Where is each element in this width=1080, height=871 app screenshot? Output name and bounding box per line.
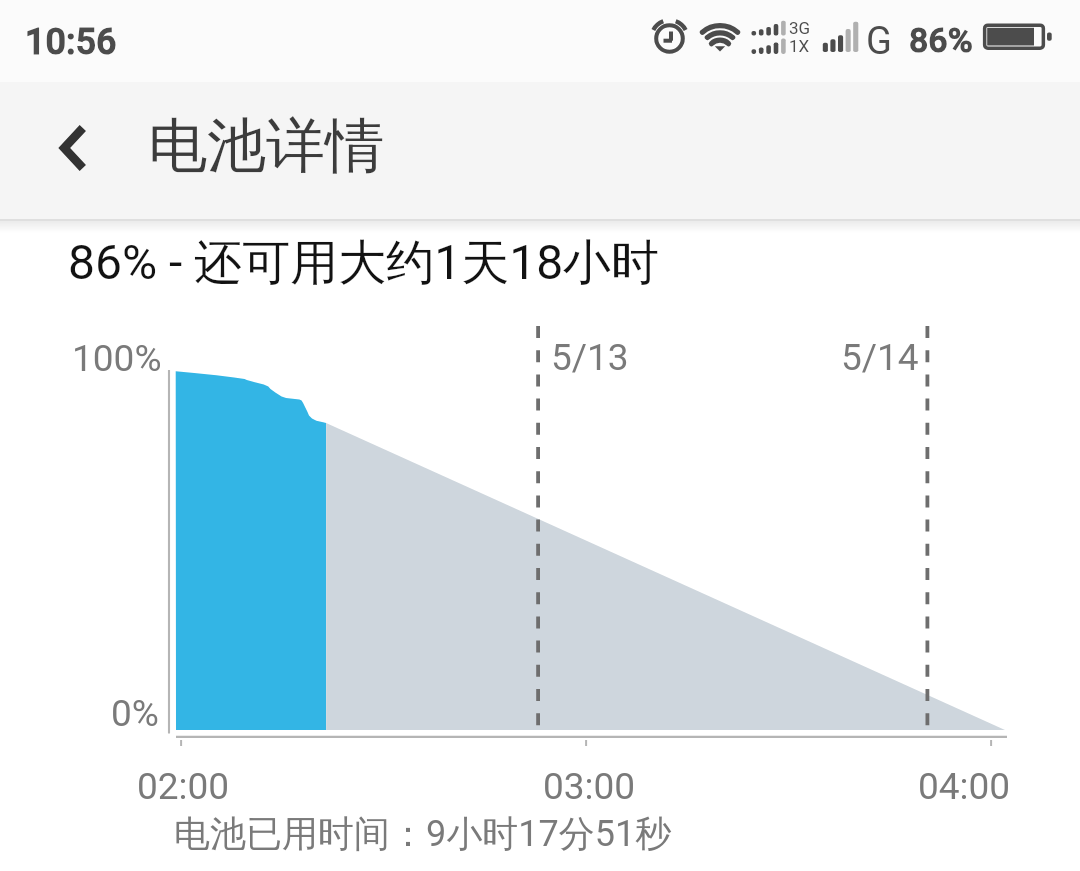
staticText: 100% — [72, 337, 162, 380]
staticText: 5/13 — [551, 336, 629, 379]
staticText: 10:56 — [25, 21, 117, 63]
staticText: G — [866, 19, 892, 64]
staticText: 02:00 — [137, 765, 230, 808]
staticText: 04:00 — [918, 765, 1011, 808]
staticText: 电池已用时间：9小时17分51秒 — [174, 811, 672, 856]
staticText: 03:00 — [543, 765, 636, 808]
staticText: 0% — [111, 692, 159, 735]
staticText: 1X — [789, 36, 810, 56]
staticText: 86% - 还可用大约1天18小时 — [68, 233, 660, 293]
staticText: 电池详情 — [148, 109, 384, 183]
staticText: 5/14 — [841, 336, 919, 379]
staticText: 86% — [909, 20, 973, 60]
staticText: 3G — [789, 18, 811, 38]
button[interactable]: Back — [19, 82, 127, 219]
